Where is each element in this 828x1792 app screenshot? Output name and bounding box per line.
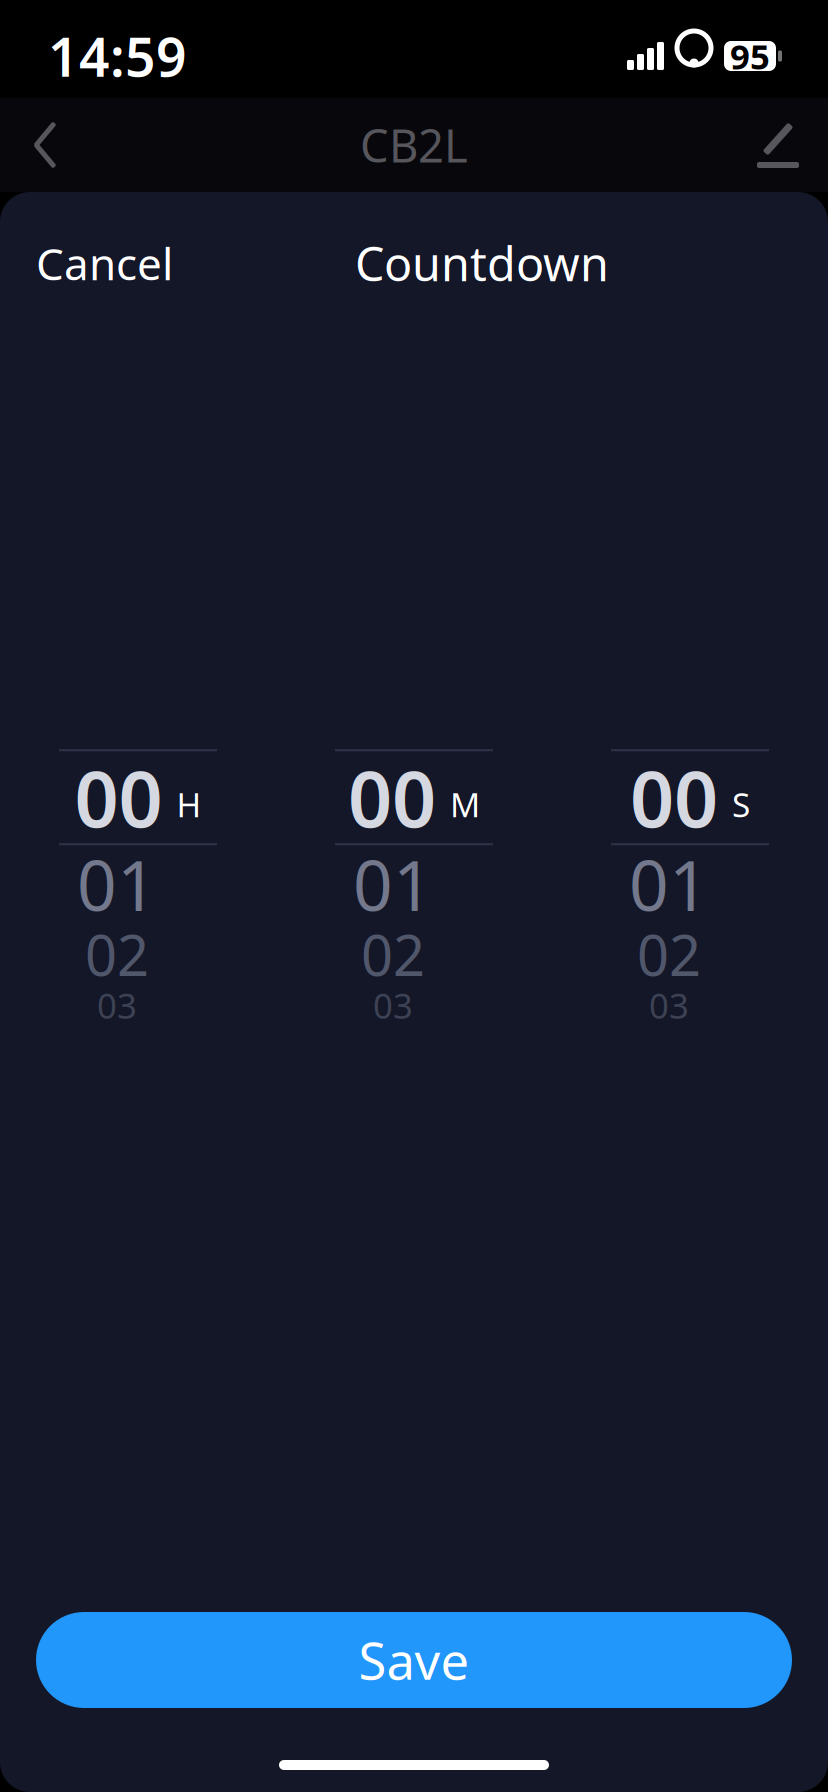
staticText: 00 <box>348 746 436 849</box>
staticText: CB2L <box>360 115 468 175</box>
button[interactable]: Edit <box>728 98 828 192</box>
staticText: 14:59 <box>48 21 187 91</box>
staticText: 01 <box>353 838 433 930</box>
staticText: 03 <box>97 982 137 1028</box>
staticText: 03 <box>373 982 413 1028</box>
staticText: 95 <box>730 33 770 79</box>
staticText: 00 <box>74 746 162 849</box>
button[interactable]: Save <box>36 1612 792 1708</box>
staticText: 00 <box>630 746 718 849</box>
staticText: 02 <box>637 917 701 991</box>
button[interactable]: Cancel <box>30 224 179 302</box>
staticText: S <box>732 782 750 826</box>
staticText: 02 <box>361 917 425 991</box>
staticText: Cancel <box>36 234 173 292</box>
staticText: M <box>450 782 480 826</box>
staticText: H <box>176 782 201 826</box>
staticText: 01 <box>629 838 709 930</box>
button[interactable]: Back <box>0 98 90 192</box>
staticText: 03 <box>649 982 689 1028</box>
staticText: Save <box>358 1626 469 1694</box>
staticText: 01 <box>77 838 157 930</box>
staticText: Countdown <box>355 232 609 294</box>
staticText: 02 <box>85 917 149 991</box>
